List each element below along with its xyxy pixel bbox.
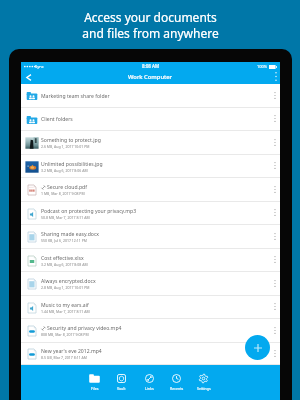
- staticText: Links: [145, 386, 154, 391]
- button[interactable]: Security and privacy video.mp4: [21, 319, 280, 343]
- button[interactable]: Sharing made easy.docx: [21, 225, 280, 249]
- button[interactable]: Links: [136, 374, 163, 391]
- button[interactable]: More options: [271, 184, 279, 195]
- staticText: Recents: [170, 386, 184, 391]
- staticText: Access your documents: [84, 9, 217, 25]
- staticText: 3.2 MB, Aug 6, 2017 8:08 AM: [41, 262, 88, 267]
- staticText: Cost effective.xlsx: [41, 255, 84, 262]
- button[interactable]: Files: [81, 374, 108, 391]
- button[interactable]: Vault: [108, 374, 135, 391]
- staticText: Security and privacy video.mp4: [47, 325, 122, 332]
- button[interactable]: Back: [21, 70, 35, 84]
- staticText: 1.44 MB, Mar 7, 2017 8:11 AM: [41, 309, 90, 314]
- button[interactable]: Something to protect.jpg: [21, 131, 280, 155]
- staticText: 8:08 AM: [142, 63, 160, 69]
- button[interactable]: Marketing team share folder: [21, 84, 280, 108]
- button[interactable]: More options: [271, 348, 279, 359]
- button[interactable]: Settings: [190, 374, 217, 391]
- staticText: Marketing team share folder: [41, 93, 110, 100]
- staticText: Music to my ears.aif: [41, 302, 89, 309]
- staticText: Always encrypted.docx: [41, 278, 96, 285]
- staticText: Something to protect.jpg: [41, 137, 101, 144]
- staticText: Vault: [117, 386, 126, 391]
- staticText: Settings: [197, 386, 211, 391]
- staticText: 50.8 MB, Mar 7, 2017 8:11 AM: [41, 215, 90, 220]
- staticText: 550 KB, Jul 6, 2017 12:11 PM: [41, 238, 88, 243]
- staticText: Podcast on protecting your privacy.mp3: [41, 208, 137, 215]
- staticText: 8.5 GB, Mar 7, 2017 8:11 AM: [41, 355, 88, 360]
- button[interactable]: Recents: [163, 374, 190, 391]
- button[interactable]: More options: [271, 160, 279, 171]
- button[interactable]: Add: [245, 335, 270, 360]
- button[interactable]: Secure cloud.pdf: [21, 178, 280, 202]
- staticText: Sharing made easy.docx: [41, 231, 100, 238]
- staticText: 100%: [257, 64, 268, 69]
- staticText: 3.2 MB, Aug 6, 2017 8:06 AM: [41, 168, 88, 173]
- staticText: Secure cloud.pdf: [47, 184, 87, 191]
- staticText: 2.6 MB, Aug 1, 2017 10:01 PM: [41, 144, 90, 149]
- staticText: Files: [91, 386, 99, 391]
- button[interactable]: More options: [271, 207, 279, 218]
- button[interactable]: More options: [271, 254, 279, 265]
- button[interactable]: More options: [271, 278, 279, 289]
- staticText: 1 MB, Mar 8, 2017 9:08 PM: [41, 191, 85, 196]
- staticText: 808 MB, Mar 8, 2017 9:08 PM: [41, 332, 89, 337]
- button[interactable]: Always encrypted.docx: [21, 272, 280, 296]
- button[interactable]: Client folders: [21, 108, 280, 131]
- button[interactable]: More options: [271, 90, 279, 101]
- staticText: Client folders: [41, 116, 73, 123]
- button[interactable]: More options: [271, 231, 279, 242]
- button[interactable]: Unlimited possibilities.jpg: [21, 155, 280, 178]
- button[interactable]: Cost effective.xlsx: [21, 249, 280, 272]
- button[interactable]: New year's eve 2012.mp4: [21, 343, 280, 365]
- button[interactable]: More options: [271, 113, 279, 124]
- button[interactable]: More options: [271, 137, 279, 148]
- staticText: New year's eve 2012.mp4: [41, 348, 102, 355]
- staticText: Unlimited possibilities.jpg: [41, 161, 103, 168]
- staticText: Work Computer: [128, 73, 173, 81]
- button[interactable]: Music to my ears.aif: [21, 296, 280, 319]
- button[interactable]: More options: [271, 325, 279, 336]
- staticText: Sync: [35, 64, 44, 69]
- staticText: and files from anywhere: [82, 25, 219, 41]
- button[interactable]: Podcast on protecting your privacy.mp3: [21, 202, 280, 225]
- button[interactable]: More options: [271, 69, 281, 83]
- button[interactable]: More options: [271, 301, 279, 312]
- staticText: 2.8 MB, Aug 1, 2017 10:01 PM: [41, 285, 90, 290]
